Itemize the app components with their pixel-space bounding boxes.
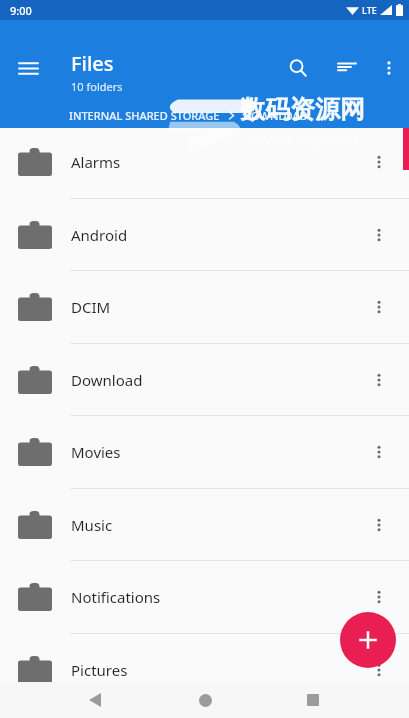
staticText: Download (71, 370, 143, 390)
button[interactable]: More options for Movies (361, 434, 397, 470)
button[interactable]: More options for Music (361, 507, 397, 543)
button[interactable]: Open navigation drawer (8, 48, 48, 88)
button[interactable]: Sort (327, 48, 367, 88)
staticText: LTE (362, 4, 377, 16)
button[interactable]: More options for Download (361, 362, 397, 398)
staticText: Alarms (71, 152, 121, 172)
button[interactable]: More options for Alarms (361, 144, 397, 180)
staticText: Movies (71, 442, 121, 462)
button[interactable]: Music (0, 489, 409, 561)
staticText: Pictures (71, 660, 128, 680)
staticText: DOWNLOAD (243, 108, 308, 123)
button[interactable]: Android (0, 199, 409, 271)
button[interactable]: More options for DCIM (361, 289, 397, 325)
button[interactable]: More options for Notifications (361, 579, 397, 615)
staticText: Music (71, 515, 113, 535)
staticText: Files (71, 50, 114, 77)
button[interactable]: Home (185, 682, 225, 718)
staticText: Notifications (71, 587, 161, 607)
button[interactable]: Movies (0, 416, 409, 488)
button[interactable]: Download (0, 344, 409, 416)
button[interactable]: DCIM (0, 271, 409, 343)
button[interactable]: Recent apps (293, 682, 333, 718)
staticText: Android (71, 225, 128, 245)
staticText: INTERNAL SHARED STORAGE (69, 108, 220, 123)
button[interactable]: Alarms (0, 126, 409, 198)
staticText: 9:00 (10, 3, 32, 18)
staticText: DCIM (71, 297, 111, 317)
button[interactable]: More options for Pictures (361, 652, 397, 688)
button[interactable]: DOWNLOAD (243, 108, 308, 123)
staticText: 10 folders (71, 79, 123, 94)
button[interactable]: More options (369, 48, 409, 88)
button[interactable]: Back (75, 682, 115, 718)
button[interactable]: Search (278, 48, 318, 88)
button[interactable]: INTERNAL SHARED STORAGE (69, 108, 220, 123)
staticText: 数码资源网 (240, 94, 365, 125)
button[interactable]: More options for Android (361, 217, 397, 253)
button[interactable]: Notifications (0, 561, 409, 633)
button[interactable]: Add (340, 612, 396, 668)
button[interactable]: Pictures (0, 634, 409, 706)
